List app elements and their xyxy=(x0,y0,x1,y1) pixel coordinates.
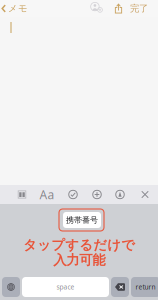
staticText: Aa xyxy=(39,186,54,202)
button[interactable]: space xyxy=(22,277,109,297)
button[interactable]: Add Attachment xyxy=(87,185,107,204)
button[interactable]: メモ xyxy=(0,0,31,17)
staticText: メモ xyxy=(8,3,28,14)
button[interactable]: Share xyxy=(109,0,127,17)
staticText: タップするだけで 入力可能 xyxy=(23,237,135,268)
button[interactable]: Delete xyxy=(111,277,129,297)
button[interactable]: Checklist xyxy=(63,185,83,204)
button[interactable]: Next Keyboard xyxy=(2,277,20,297)
button[interactable]: 完了 xyxy=(128,0,150,17)
button[interactable]: Text Format xyxy=(37,185,57,204)
button[interactable]: Hide Toolbar xyxy=(135,185,155,204)
button[interactable]: Table xyxy=(12,185,32,204)
staticText: space xyxy=(56,283,74,291)
button[interactable]: Markup xyxy=(110,185,130,204)
button[interactable]: 携帯番号 xyxy=(63,212,101,228)
button[interactable]: Add People xyxy=(86,0,108,17)
button[interactable]: return xyxy=(131,277,158,297)
staticText: return xyxy=(135,283,155,291)
staticText: 携帯番号 xyxy=(66,215,98,225)
staticText: 完了 xyxy=(130,3,148,14)
